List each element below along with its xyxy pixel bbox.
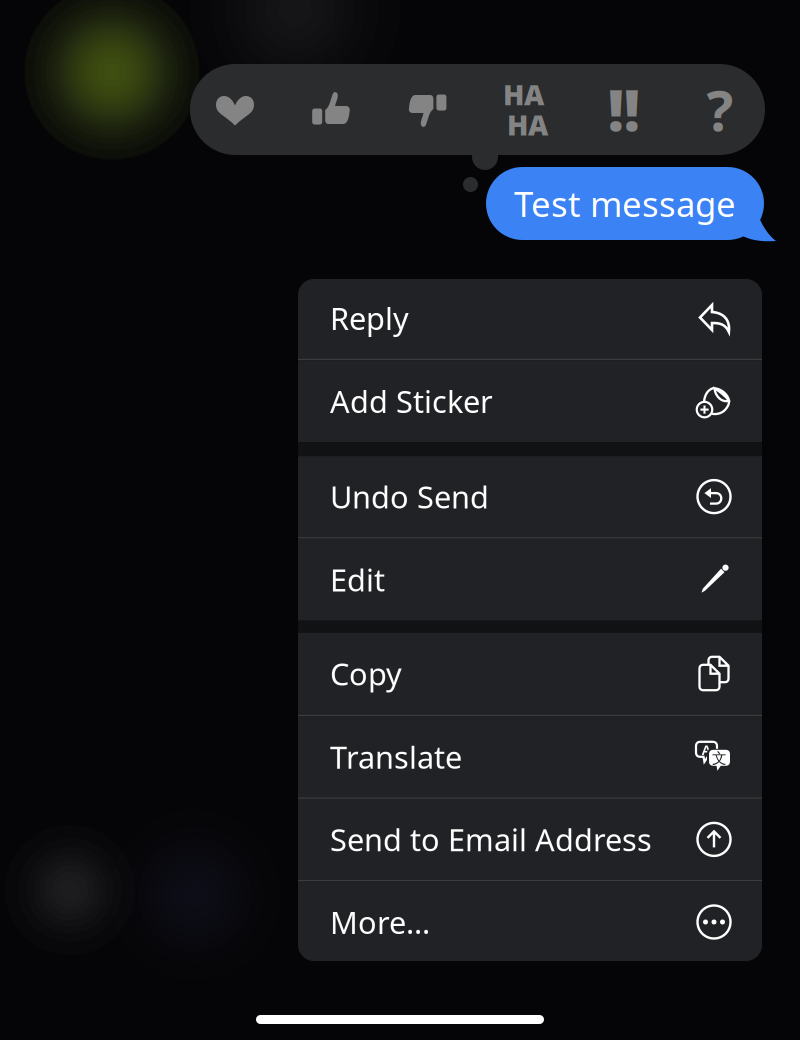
staticText: Translate [330, 736, 462, 777]
staticText: Reply [330, 298, 409, 338]
staticText: More... [330, 902, 430, 942]
button[interactable]: Exclamation [601, 84, 647, 134]
button[interactable]: Question mark [697, 84, 743, 134]
staticText: !! [608, 72, 640, 147]
button[interactable]: Like [308, 84, 354, 134]
staticText: Edit [330, 559, 385, 600]
staticText: Send to Email Address [330, 819, 652, 860]
button[interactable]: Undo Send [298, 456, 762, 537]
button[interactable]: Reply [298, 277, 762, 358]
staticText: 文 [712, 749, 727, 767]
staticText: ? [706, 72, 733, 147]
button[interactable]: Copy [298, 633, 762, 715]
button[interactable]: Haha [501, 84, 551, 134]
staticText: HA [503, 76, 544, 113]
staticText: Copy [330, 653, 402, 694]
staticText: Test message [514, 180, 736, 226]
staticText: HA [507, 106, 548, 143]
button[interactable]: More... [298, 881, 762, 962]
button[interactable]: Translate [298, 716, 762, 797]
staticText: Undo Send [330, 476, 489, 517]
button[interactable]: Dislike [404, 84, 450, 134]
button[interactable]: Love [212, 84, 258, 134]
button[interactable]: Add Sticker [298, 360, 762, 442]
staticText: Add Sticker [330, 381, 493, 421]
button[interactable]: Send to Email Address [298, 799, 762, 880]
button[interactable]: Edit [298, 539, 762, 621]
staticText: A [701, 740, 711, 760]
